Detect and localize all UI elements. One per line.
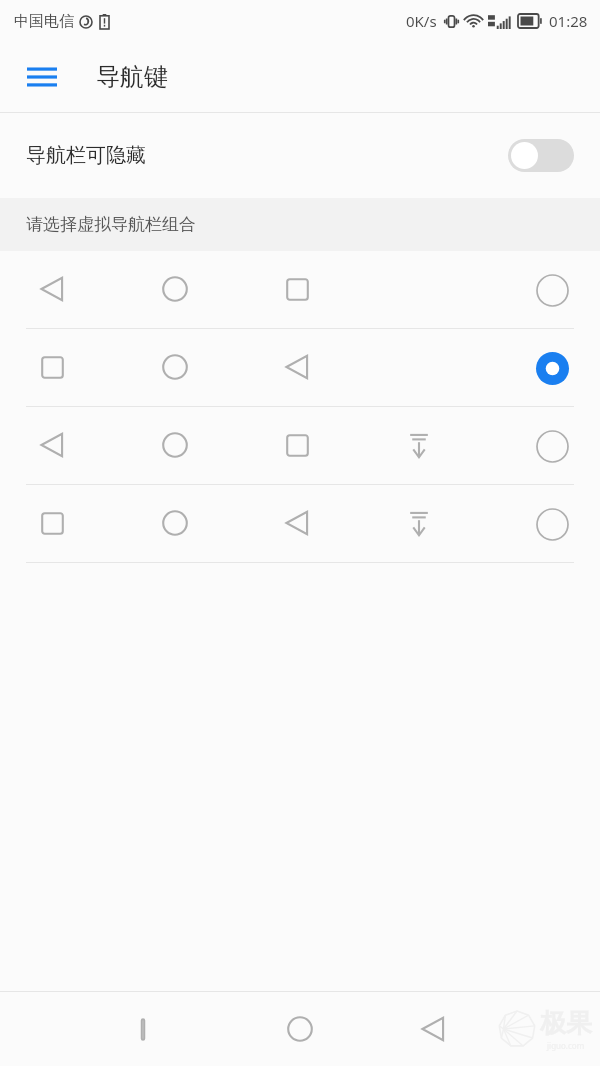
staticText: 极果 bbox=[540, 1007, 592, 1040]
button[interactable]: Select combination bbox=[0, 251, 600, 328]
button[interactable]: Select combination bbox=[0, 329, 600, 406]
staticText: 01:28 bbox=[549, 11, 588, 31]
button[interactable]: 导航栏可隐藏 switch bbox=[508, 139, 574, 172]
button[interactable]: Select combination bbox=[535, 273, 569, 307]
button[interactable]: Select combination bbox=[535, 507, 569, 541]
staticText: jiguo.com bbox=[547, 1040, 585, 1051]
button[interactable]: Home bbox=[277, 992, 323, 1066]
staticText: 导航键 bbox=[96, 62, 168, 92]
staticText: 中国电信 bbox=[14, 12, 74, 31]
button[interactable]: Select combination bbox=[535, 429, 569, 463]
staticText: 0K/s bbox=[406, 11, 437, 31]
button[interactable]: Select combination bbox=[0, 407, 600, 484]
staticText: 请选择虚拟导航栏组合 bbox=[26, 214, 196, 235]
staticText: 导航栏可隐藏 bbox=[26, 143, 146, 168]
button[interactable]: Back bbox=[410, 992, 456, 1066]
button[interactable]: Select combination bbox=[535, 351, 569, 385]
button[interactable]: Menu bbox=[18, 53, 66, 101]
button[interactable]: Select combination bbox=[0, 485, 600, 562]
button[interactable]: 导航栏可隐藏 bbox=[0, 113, 600, 198]
